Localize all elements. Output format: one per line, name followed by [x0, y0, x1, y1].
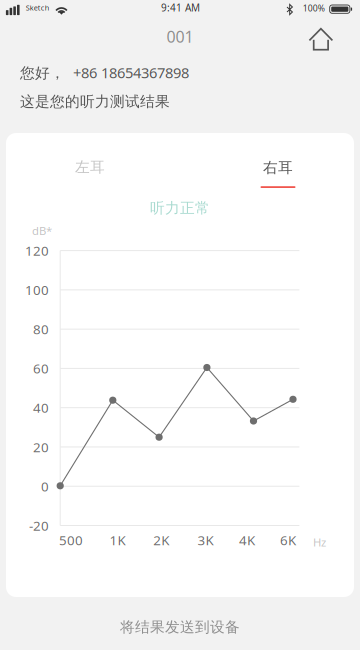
staticText: dB*	[32, 223, 52, 238]
staticText: 2K	[153, 531, 169, 549]
staticText: 120	[25, 241, 49, 260]
staticText: 500	[59, 531, 83, 549]
staticText: 001	[166, 26, 193, 47]
staticText: 将结果发送到设备	[120, 618, 240, 636]
staticText: 1K	[110, 531, 126, 549]
staticText: 6K	[280, 531, 296, 549]
button[interactable]: 左耳	[60, 153, 120, 181]
staticText: 100%	[303, 2, 325, 14]
staticText: 听力正常	[150, 199, 210, 217]
button[interactable]: Home	[300, 22, 342, 56]
button[interactable]: 将结果发送到设备	[0, 605, 360, 649]
staticText: 9:41 AM	[161, 1, 200, 14]
staticText: 您好， +86 18654367898	[20, 62, 189, 82]
staticText: 100	[25, 281, 49, 299]
staticText: 60	[33, 359, 49, 377]
staticText: -20	[29, 516, 49, 535]
staticText: Sketch	[26, 3, 50, 13]
staticText: 3K	[197, 531, 213, 549]
staticText: Hz	[313, 534, 326, 550]
staticText: 20	[33, 438, 49, 456]
staticText: 0	[41, 477, 49, 495]
staticText: 这是您的听力测试结果	[20, 92, 170, 111]
staticText: 左耳	[75, 158, 105, 176]
button[interactable]: 右耳	[248, 153, 308, 193]
staticText: 80	[33, 320, 49, 338]
staticText: 4K	[239, 531, 255, 549]
staticText: 右耳	[263, 158, 293, 177]
staticText: 40	[33, 399, 49, 417]
